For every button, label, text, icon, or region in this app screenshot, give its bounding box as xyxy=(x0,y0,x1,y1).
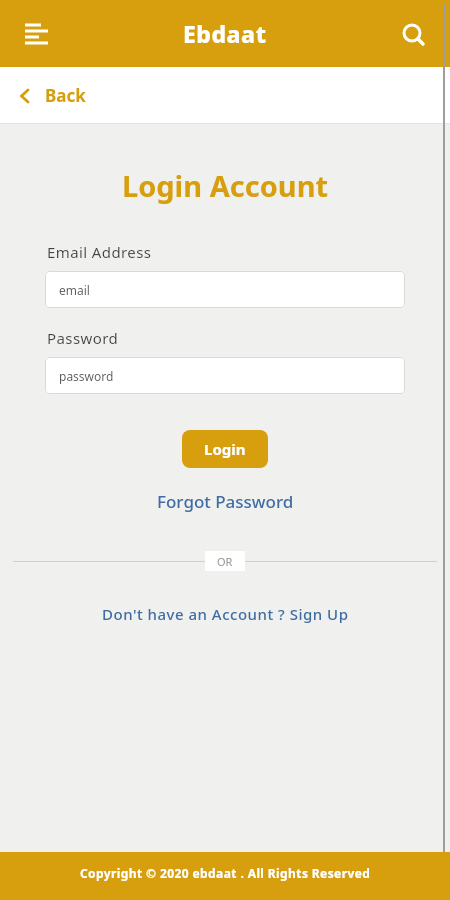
button[interactable]: Back xyxy=(18,84,86,107)
button[interactable] xyxy=(18,16,54,52)
button[interactable]: Don't have an Account ? Sign Up xyxy=(102,604,349,624)
staticText: Back xyxy=(45,84,86,107)
staticText: Copyright © 2020 ebdaat . All Rights Res… xyxy=(80,865,371,881)
button[interactable]: password xyxy=(45,357,405,394)
staticText: Email Address xyxy=(47,242,152,262)
staticText: OR xyxy=(217,554,233,569)
staticText: password xyxy=(59,368,114,384)
staticText: email xyxy=(59,282,90,298)
staticText: Password xyxy=(47,328,119,348)
button[interactable] xyxy=(399,20,427,48)
staticText: Ebdaat xyxy=(183,18,267,49)
button[interactable]: Login xyxy=(182,430,268,468)
staticText: Login xyxy=(204,439,246,459)
staticText: Login Account xyxy=(0,166,450,205)
button[interactable]: email xyxy=(45,271,405,308)
button[interactable]: Forgot Password xyxy=(157,490,294,513)
